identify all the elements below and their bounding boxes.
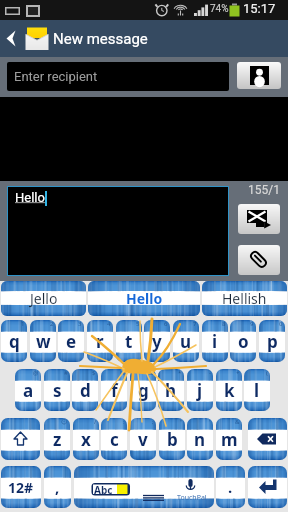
button[interactable]: h [158, 369, 184, 411]
button[interactable]: k [216, 369, 242, 411]
staticText: , [55, 477, 60, 497]
staticText: 9 [250, 320, 254, 328]
staticText: m [221, 428, 238, 451]
staticText: . [228, 477, 233, 497]
staticText: % [120, 369, 125, 377]
button[interactable]: j [187, 369, 213, 411]
staticText: j [197, 379, 203, 402]
staticText: 7 [193, 320, 197, 328]
button[interactable]: g [130, 369, 156, 411]
button[interactable]: 12# [1, 466, 41, 508]
staticText: Hello [126, 289, 163, 308]
button[interactable]: Attach [238, 245, 280, 275]
button[interactable]: e [58, 320, 84, 362]
staticText: a [23, 379, 34, 402]
button[interactable]: v [130, 418, 156, 460]
button[interactable]: b [159, 418, 185, 460]
staticText: 155/1 [248, 183, 280, 197]
staticText: v [138, 428, 148, 451]
staticText: @ [33, 369, 39, 377]
staticText: 3 [78, 320, 82, 328]
staticText: ' [209, 418, 211, 426]
staticText: o [238, 330, 249, 353]
staticText: - [209, 369, 211, 377]
button[interactable]: p [259, 320, 285, 362]
button[interactable]: w [30, 320, 56, 362]
staticText: + [236, 369, 240, 377]
button[interactable]: Hellish [202, 281, 287, 316]
button[interactable]: Send [238, 204, 280, 234]
staticText: TouchPal [177, 493, 207, 503]
button[interactable]: Jello [1, 281, 86, 316]
button[interactable]: m [216, 418, 242, 460]
button[interactable]: Contacts [237, 62, 281, 89]
staticText: 6 [164, 320, 168, 328]
staticText: l [254, 379, 260, 402]
button[interactable]: y [144, 320, 170, 362]
staticText: Hellish [222, 289, 267, 308]
staticText: q [9, 330, 20, 353]
staticText: & [235, 418, 240, 426]
staticText: n [194, 428, 206, 451]
button[interactable]: Shift [1, 418, 40, 460]
button[interactable]: d [72, 369, 98, 411]
button[interactable]: Space [74, 466, 214, 508]
button[interactable]: Enter [248, 466, 287, 508]
staticText: Enter recipient [14, 69, 98, 84]
staticText: ( [266, 369, 268, 377]
staticText: s [53, 379, 62, 402]
staticText: & [149, 369, 154, 377]
button[interactable]: Enter recipient [7, 62, 229, 91]
button[interactable]: Back [0, 20, 22, 57]
staticText: ; [152, 418, 154, 426]
staticText: d [80, 379, 91, 402]
staticText: k [224, 379, 235, 402]
button[interactable]: u [173, 320, 199, 362]
staticText: 15:17 [243, 1, 276, 16]
staticText: 0 [279, 320, 283, 328]
button[interactable]: x [73, 418, 99, 460]
staticText: i [212, 330, 218, 353]
staticText: 4 [107, 320, 111, 328]
button[interactable]: a [15, 369, 41, 411]
staticText: p [267, 330, 278, 353]
staticText: w [36, 330, 51, 353]
staticText: g [138, 379, 149, 402]
button[interactable]: . [216, 466, 245, 508]
button[interactable]: i [202, 320, 228, 362]
button[interactable]: n [187, 418, 213, 460]
staticText: t [125, 330, 133, 353]
button[interactable]: o [230, 320, 256, 362]
button[interactable]: Backspace [248, 418, 287, 460]
button[interactable]: q [1, 320, 27, 362]
staticText: : [123, 418, 125, 426]
staticText: y [152, 330, 162, 353]
button[interactable]: c [101, 418, 127, 460]
staticText: / [94, 418, 97, 426]
staticText: x [81, 428, 91, 451]
staticText: h [165, 379, 177, 402]
button[interactable]: s [44, 369, 70, 411]
staticText: f [111, 379, 118, 402]
button[interactable]: Hello [88, 281, 200, 316]
staticText: Hello [15, 190, 45, 205]
staticText: z [53, 428, 62, 451]
staticText: $ [92, 369, 96, 377]
staticText: 8 [222, 320, 226, 328]
staticText: r [96, 330, 104, 353]
staticText: 1 [21, 320, 25, 328]
button[interactable]: f [101, 369, 127, 411]
button[interactable]: Hello [8, 187, 228, 275]
button[interactable]: l [244, 369, 270, 411]
staticText: 2 [50, 320, 54, 328]
staticText: 12# [8, 478, 34, 497]
staticText: 5 [136, 320, 140, 328]
staticText: u [180, 330, 192, 353]
button[interactable]: t [116, 320, 142, 362]
button[interactable]: , [44, 466, 71, 508]
staticText: ☺ [61, 418, 68, 425]
button[interactable]: z [44, 418, 70, 460]
button[interactable]: r [87, 320, 113, 362]
staticText: 74% [210, 3, 229, 15]
staticText: Abc [94, 483, 113, 497]
